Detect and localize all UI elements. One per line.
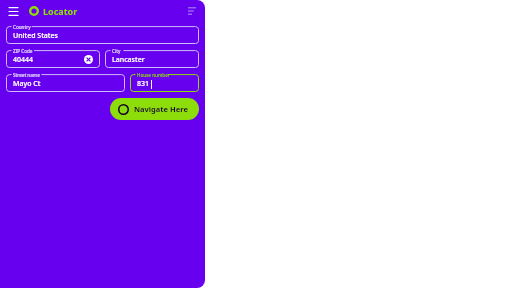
staticText: Country — [13, 24, 31, 30]
staticText: City — [112, 48, 121, 54]
staticText: 40444 — [13, 55, 34, 65]
button[interactable]: ZIP Code — [6, 47, 100, 68]
staticText: United States — [13, 31, 58, 41]
button[interactable]: Country — [6, 23, 199, 44]
button[interactable]: Sort — [185, 4, 199, 18]
button[interactable]: City — [105, 47, 199, 68]
staticText: House number — [137, 72, 170, 78]
button[interactable]: Navigate Here — [110, 98, 199, 120]
button[interactable]: House number — [130, 71, 199, 92]
button[interactable]: Clear ZIP Code — [82, 53, 95, 66]
staticText: Lancaster — [112, 55, 145, 65]
button[interactable]: Street name — [6, 71, 125, 92]
button[interactable]: Menu — [6, 4, 21, 19]
staticText: Mayo Ct — [13, 79, 41, 89]
staticText: 831 — [137, 79, 150, 89]
staticText: ZIP Code — [13, 48, 33, 54]
button[interactable]: Locator — [29, 5, 78, 17]
staticText: Navigate Here — [134, 104, 188, 114]
staticText: Street name — [13, 72, 40, 78]
staticText: Locator — [43, 5, 78, 17]
